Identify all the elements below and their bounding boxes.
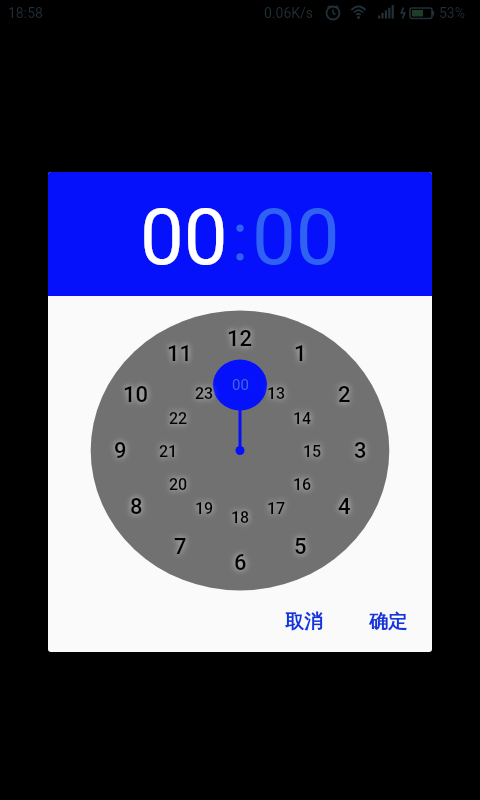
- staticText: 13: [267, 384, 286, 403]
- staticText: 5: [294, 534, 307, 560]
- staticText: 12: [227, 326, 253, 352]
- staticText: 8: [130, 494, 143, 520]
- staticText: 6: [234, 550, 247, 576]
- staticText: 取消: [285, 610, 323, 634]
- staticText: 1: [294, 341, 307, 367]
- staticText: 2: [338, 382, 351, 408]
- staticText: 4: [338, 494, 351, 520]
- staticText: 10: [123, 382, 149, 408]
- staticText: 9: [114, 438, 127, 464]
- staticText: 18:58: [8, 5, 43, 21]
- staticText: 3: [354, 438, 367, 464]
- staticText: 00: [232, 376, 249, 394]
- staticText: 14: [293, 409, 312, 428]
- staticText: 53%: [439, 5, 465, 21]
- staticText: 0.06K/s: [264, 5, 314, 21]
- staticText: :: [232, 199, 248, 276]
- staticText: 20: [169, 475, 188, 494]
- staticText: 00: [252, 192, 340, 283]
- staticText: 7: [174, 534, 187, 560]
- button[interactable]: 00: [252, 192, 340, 283]
- button[interactable]: 确定: [344, 598, 432, 646]
- staticText: 00: [140, 192, 228, 283]
- staticText: 16: [293, 475, 312, 494]
- staticText: 22: [169, 409, 188, 428]
- staticText: 11: [167, 341, 193, 367]
- staticText: 19: [195, 499, 214, 518]
- staticText: 18: [231, 508, 250, 527]
- button[interactable]: 00: [140, 192, 228, 283]
- staticText: 15: [303, 442, 322, 461]
- staticText: 确定: [369, 610, 407, 634]
- button[interactable]: 取消: [260, 598, 348, 646]
- staticText: 23: [195, 384, 214, 403]
- staticText: 17: [267, 499, 286, 518]
- staticText: 21: [159, 442, 178, 461]
